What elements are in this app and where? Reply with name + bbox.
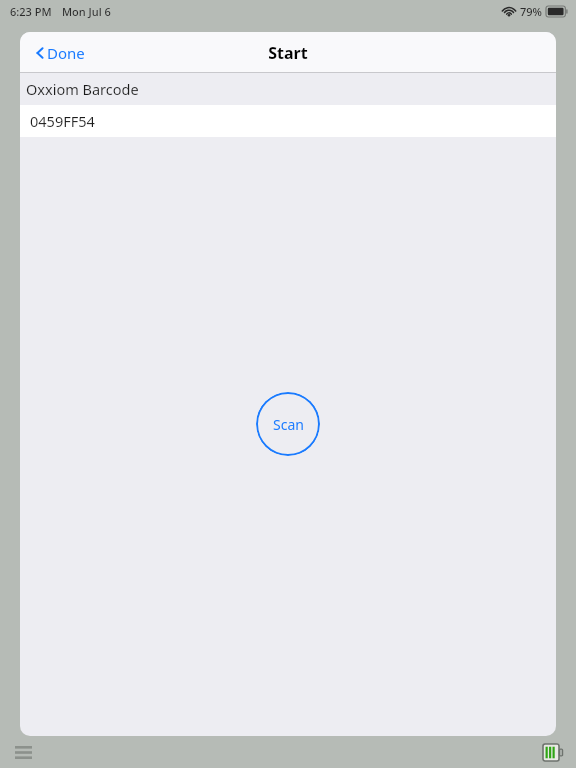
staticText: 79%: [520, 4, 542, 19]
button[interactable]: Scan: [256, 392, 320, 456]
button[interactable]: Done: [32, 39, 89, 67]
staticText: Done: [47, 43, 85, 63]
staticText: Start: [268, 42, 308, 64]
staticText: 0459FF54: [30, 111, 95, 131]
button[interactable]: Scanner battery: [538, 737, 568, 767]
staticText: Mon Jul 6: [62, 4, 111, 19]
button[interactable]: Menu: [8, 737, 38, 767]
button[interactable]: 0459FF54: [20, 105, 556, 137]
staticText: Scan: [273, 415, 304, 434]
staticText: Oxxiom Barcode: [26, 79, 139, 99]
staticText: 6:23 PM: [10, 4, 52, 19]
